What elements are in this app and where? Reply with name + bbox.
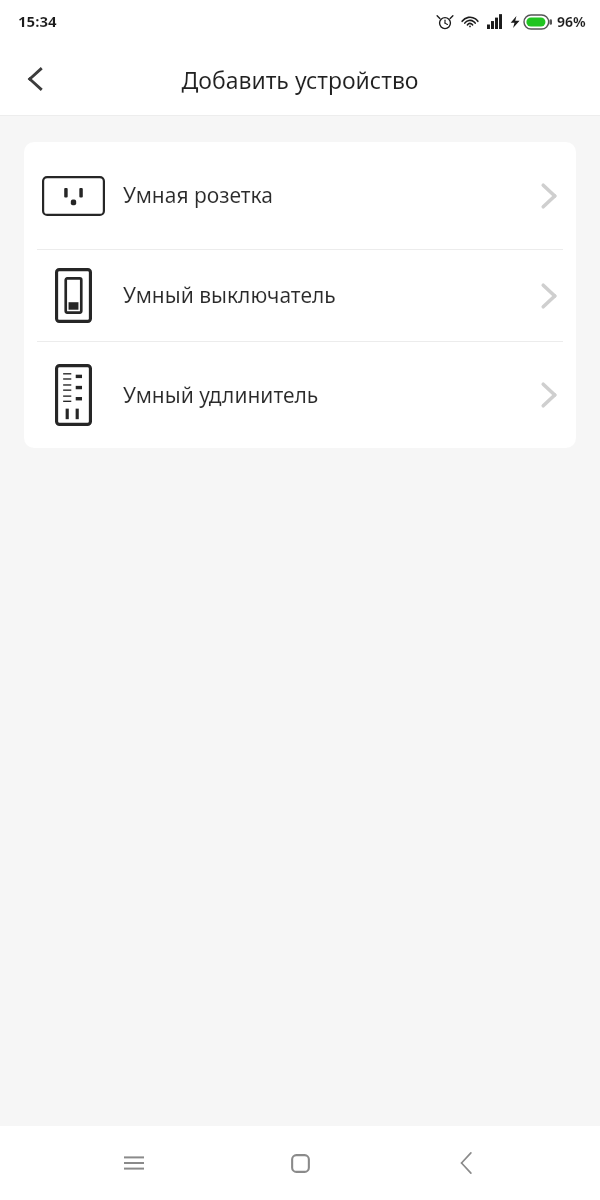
staticText: Умная розетка [123,181,274,210]
button[interactable]: Умный удлинитель [24,342,576,448]
button[interactable]: Home [268,1131,332,1195]
staticText: 15:34 [18,11,57,31]
button[interactable]: Назад [8,51,64,107]
button[interactable]: Умная розетка [24,142,576,249]
button[interactable]: Умный выключатель [24,250,576,341]
button[interactable]: Recents [102,1131,166,1195]
staticText: Умный выключатель [123,281,336,310]
staticText: 96% [557,12,586,31]
button[interactable]: Back [434,1131,498,1195]
staticText: Умный удлинитель [123,381,319,410]
staticText: Добавить устройство [181,64,419,95]
